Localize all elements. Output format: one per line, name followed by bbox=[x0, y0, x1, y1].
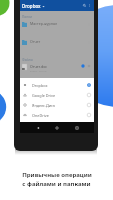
button[interactable]: Яндекс.Диск bbox=[20, 100, 94, 110]
staticText: Отчет.doc bbox=[30, 64, 48, 69]
button[interactable]: Мастер-журнал bbox=[20, 19, 94, 37]
staticText: Мастер-журнал bbox=[30, 21, 58, 26]
button[interactable]: Отчет bbox=[20, 37, 94, 55]
staticText: Отчет bbox=[30, 39, 41, 44]
staticText: Dropbox bbox=[22, 3, 41, 9]
staticText: Папки bbox=[22, 15, 32, 19]
other: Share bbox=[81, 64, 85, 68]
staticText: Файлы bbox=[22, 58, 33, 62]
staticText: Dropbox bbox=[32, 83, 48, 88]
staticText: OneDrive bbox=[32, 113, 49, 118]
button[interactable]: OneDrive bbox=[20, 110, 94, 120]
staticText: Яндекс.Диск bbox=[32, 103, 55, 108]
button[interactable]: More options bbox=[87, 3, 92, 8]
button[interactable]: Google Drive bbox=[20, 90, 94, 100]
button[interactable]: Отчет.doc bbox=[20, 62, 94, 76]
staticText: Google Drive bbox=[32, 93, 56, 98]
other: Home bbox=[55, 126, 59, 130]
staticText: Привычные операции bbox=[22, 171, 92, 179]
button[interactable]: Dropbox bbox=[22, 3, 45, 9]
other: More bbox=[87, 64, 91, 68]
staticText: с файлами и папками bbox=[22, 180, 91, 188]
other: Recents bbox=[75, 126, 79, 130]
button[interactable]: Search bbox=[82, 3, 87, 8]
other: Back bbox=[36, 126, 40, 130]
staticText: вчера · 240 КБ bbox=[30, 69, 47, 72]
button[interactable]: Dropbox bbox=[20, 80, 94, 90]
